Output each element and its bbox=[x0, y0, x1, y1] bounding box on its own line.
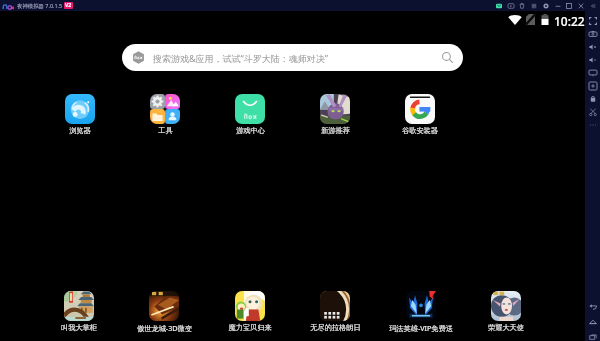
button[interactable]: Screenshot bbox=[585, 28, 600, 40]
button[interactable]: 工具 bbox=[123, 94, 207, 135]
button[interactable]: Settings bbox=[540, 0, 551, 11]
button[interactable]: 魔力宝贝归来 bbox=[208, 291, 292, 332]
staticText: 谷歌安装器 bbox=[402, 126, 438, 135]
button[interactable]: Home bbox=[585, 316, 600, 328]
button[interactable]: 新游推荐 bbox=[293, 94, 377, 135]
button[interactable]: Volume down bbox=[585, 54, 600, 66]
staticText: 搜索游戏&应用，试试“斗罗大陆：魂师对决” bbox=[153, 52, 329, 64]
button[interactable]: Recents bbox=[585, 331, 600, 341]
staticText: 浏览器 bbox=[69, 126, 91, 135]
button[interactable]: Backpack bbox=[516, 0, 527, 11]
button[interactable]: Fullscreen bbox=[585, 15, 600, 27]
staticText: 无尽的拉格朗日 bbox=[310, 323, 361, 332]
button[interactable]: Back bbox=[585, 301, 600, 313]
staticText: 10:22 bbox=[554, 13, 585, 29]
button[interactable]: Cut bbox=[585, 106, 600, 118]
button[interactable]: Close bbox=[575, 0, 586, 11]
staticText: 荣耀大天使 bbox=[488, 323, 524, 332]
staticText: 夜神模拟器 7.0.1.5 bbox=[17, 2, 63, 9]
button[interactable]: Collapse toolbar bbox=[587, 0, 598, 11]
staticText: 工具 bbox=[158, 126, 173, 135]
staticText: 傲世龙城-3D微变 bbox=[137, 323, 192, 333]
button[interactable]: Volume up bbox=[585, 41, 600, 53]
staticText: 魔力宝贝归来 bbox=[228, 323, 272, 332]
button[interactable]: Virtual screen bbox=[585, 67, 600, 79]
staticText: 新游推荐 bbox=[321, 126, 350, 135]
button[interactable]: Menu bbox=[528, 0, 539, 11]
button[interactable]: 叫我大掌柜 bbox=[37, 291, 121, 332]
button[interactable]: 游戏中心 bbox=[208, 94, 292, 135]
button[interactable]: More bbox=[585, 119, 600, 131]
button[interactable]: Minimize bbox=[552, 0, 563, 11]
staticText: 玛法英雄-VIP免费送 bbox=[389, 323, 453, 333]
button[interactable]: Install apk bbox=[585, 80, 600, 92]
button[interactable]: 搜索游戏&应用，试试“斗罗大陆：魂师对决” bbox=[122, 44, 463, 71]
staticText: 游戏中心 bbox=[236, 126, 265, 135]
button[interactable]: Maximize bbox=[563, 0, 574, 11]
button[interactable]: 荣耀大天使 bbox=[464, 291, 548, 332]
button[interactable]: 玛法英雄-VIP免费送 bbox=[379, 291, 463, 333]
button[interactable]: 傲世龙城-3D微变 bbox=[122, 291, 206, 333]
button[interactable]: 无尽的拉格朗日 bbox=[293, 291, 377, 332]
button[interactable]: Multi instance bbox=[505, 0, 516, 11]
staticText: 叫我大掌柜 bbox=[61, 323, 97, 332]
button[interactable]: Messages bbox=[493, 0, 504, 11]
staticText: V2 bbox=[65, 2, 72, 9]
button[interactable]: Shake bbox=[585, 93, 600, 105]
button[interactable]: 浏览器 bbox=[38, 94, 122, 135]
button[interactable]: 谷歌安装器 bbox=[378, 94, 462, 135]
